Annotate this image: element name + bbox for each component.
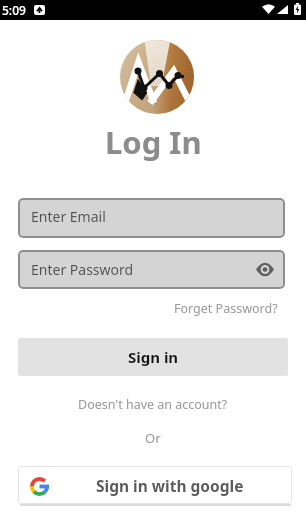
staticText: Sign in [128, 347, 179, 367]
button[interactable]: Sign in [18, 338, 288, 376]
staticText: Forget Password? [174, 300, 278, 317]
staticText: Doesn't have an account? [78, 396, 228, 413]
button[interactable]: Sign in with google [18, 466, 292, 504]
staticText: 5:09 [2, 2, 26, 18]
staticText: Log In [105, 121, 202, 163]
button[interactable]: Enter Email [18, 198, 285, 238]
staticText: Enter Email [31, 207, 106, 226]
button[interactable]: Forget Password? [174, 300, 278, 317]
button[interactable]: Doesn't have an account? [78, 396, 228, 413]
staticText: Or [145, 429, 161, 447]
button[interactable]: Enter Password [18, 250, 285, 289]
staticText: Enter Password [31, 260, 134, 279]
button[interactable] [256, 263, 274, 276]
staticText: Sign in with google [96, 475, 244, 496]
